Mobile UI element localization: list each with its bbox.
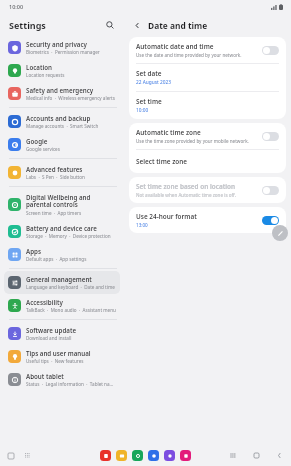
staticText: Default apps · App settings [26,256,87,262]
staticText: Location [26,63,52,71]
button[interactable]: Select time zone [129,150,286,173]
staticText: Location requests [26,72,65,78]
button[interactable]: Off [262,132,279,141]
staticText: Use 24-hour format [136,212,197,221]
button[interactable]: Set date [129,64,286,91]
staticText: TalkBack · Mono audio · Assistant menu [26,307,116,313]
staticText: 10:00 [9,3,24,10]
staticText: Google [26,137,48,145]
staticText: 10:00 [136,107,149,114]
button[interactable]: Accessibility [4,294,120,317]
button[interactable]: Back [274,450,285,461]
button[interactable]: Off [262,186,279,195]
button[interactable]: App 4 [164,450,175,461]
staticText: Medical info · Wireless emergency alerts [26,95,115,101]
staticText: Google services [26,146,60,152]
staticText: Software update [26,326,77,334]
button[interactable]: App 1 [116,450,127,461]
button[interactable]: App 3 [148,450,159,461]
button[interactable]: Battery and device care [4,220,120,243]
staticText: About tablet [26,372,64,380]
button[interactable]: Digital Wellbeing and parental controls [4,189,120,220]
button[interactable]: All apps [23,451,33,461]
button[interactable]: Back [129,17,145,33]
staticText: Accounts and backup [26,114,91,122]
button[interactable]: Edit [272,225,288,241]
button[interactable]: Search [102,17,118,33]
staticText: Apps [26,247,41,255]
staticText: Download and install [26,335,72,341]
button[interactable]: Safety and emergency [4,82,120,105]
staticText: Automatic time zone [136,128,201,137]
staticText: Manage accounts · Smart Switch [26,123,99,129]
button[interactable]: Google [4,133,120,156]
button[interactable]: Use 24-hour format [129,207,286,233]
button[interactable]: Security and privacy [4,36,120,59]
button[interactable]: Automatic time zone [129,123,286,149]
staticText: Language and keyboard · Date and time [26,284,115,290]
button[interactable]: Tips and user manual [4,345,120,368]
staticText: 13:00 [136,222,148,228]
staticText: Automatic date and time [136,42,214,51]
staticText: Use the time zone provided by your mobil… [136,138,249,144]
staticText: General management [26,275,92,283]
button[interactable]: Recent apps [228,450,239,461]
button[interactable]: Set time zone based on location [129,177,286,203]
button[interactable]: About tablet [4,368,120,391]
button[interactable]: On [262,216,279,225]
staticText: Select time zone [136,157,188,166]
button[interactable]: Recents panel [6,451,16,461]
staticText: Accessibility [26,298,63,306]
staticText: Screen time · App timers [26,210,82,216]
button[interactable]: App 0 [100,450,111,461]
button[interactable]: Apps [4,243,120,266]
staticText: Storage · Memory · Device protection [26,233,111,239]
staticText: 22 August 2023 [136,79,171,86]
button[interactable]: Set time [129,92,286,119]
button[interactable]: App 5 [180,450,191,461]
staticText: Set time zone based on location [136,182,236,191]
button[interactable]: General management [4,271,120,294]
staticText: Tips and user manual [26,349,91,357]
staticText: Useful tips · New features [26,358,84,364]
button[interactable]: Accounts and backup [4,110,120,133]
button[interactable]: Automatic date and time [129,37,286,63]
button[interactable]: Location [4,59,120,82]
button[interactable]: Home [251,450,262,461]
staticText: Advanced features [26,165,83,173]
staticText: Settings [9,19,46,31]
button[interactable]: Off [262,46,279,55]
staticText: Labs · S Pen · Side button [26,174,85,180]
button[interactable]: Software update [4,322,120,345]
staticText: Safety and emergency [26,86,94,94]
staticText: Use the date and time provided by your n… [136,52,242,58]
staticText: Set date [136,69,162,78]
staticText: Security and privacy [26,40,87,48]
staticText: Digital Wellbeing and parental controls [26,193,116,209]
staticText: Biometrics · Permission manager [26,49,100,55]
staticText: Not available when Automatic time zone i… [136,192,236,198]
button[interactable]: Advanced features [4,161,120,184]
staticText: Set time [136,97,162,106]
staticText: Status · Legal information · Tablet name [26,381,116,387]
button[interactable]: App 2 [132,450,143,461]
staticText: Battery and device care [26,224,97,232]
staticText: Date and time [148,20,208,31]
